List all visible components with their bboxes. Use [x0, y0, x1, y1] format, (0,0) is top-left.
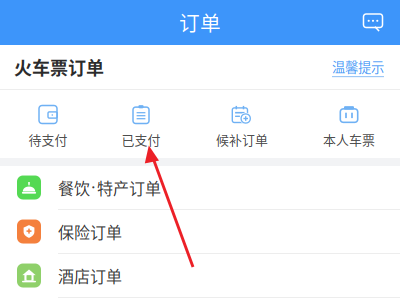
staticText: 酒店订单 [58, 264, 122, 287]
button[interactable]: 消息 [355, 4, 391, 40]
staticText: 本人车票 [323, 130, 375, 149]
staticText: · [91, 178, 96, 197]
button[interactable]: 保险订单 [0, 210, 400, 253]
staticText: 订单 [179, 7, 221, 37]
staticText: 保险订单 [58, 220, 122, 243]
button[interactable]: 温馨提示 [332, 57, 384, 77]
button[interactable]: 已支付 [96, 90, 186, 158]
staticText: 候补订单 [216, 130, 268, 149]
button[interactable]: 候补订单 [186, 90, 298, 158]
button[interactable]: 餐饮 [0, 166, 400, 209]
button[interactable]: 待支付 [0, 90, 96, 158]
button[interactable]: 本人车票 [298, 90, 400, 158]
staticText: 已支付 [121, 130, 160, 149]
staticText: 特产订单 [97, 176, 161, 199]
button[interactable]: 酒店订单 [0, 254, 400, 297]
staticText: 温馨提示 [332, 57, 384, 76]
staticText: 待支付 [28, 130, 67, 149]
staticText: 火车票订单 [14, 54, 104, 80]
staticText: 餐饮 [58, 176, 90, 199]
